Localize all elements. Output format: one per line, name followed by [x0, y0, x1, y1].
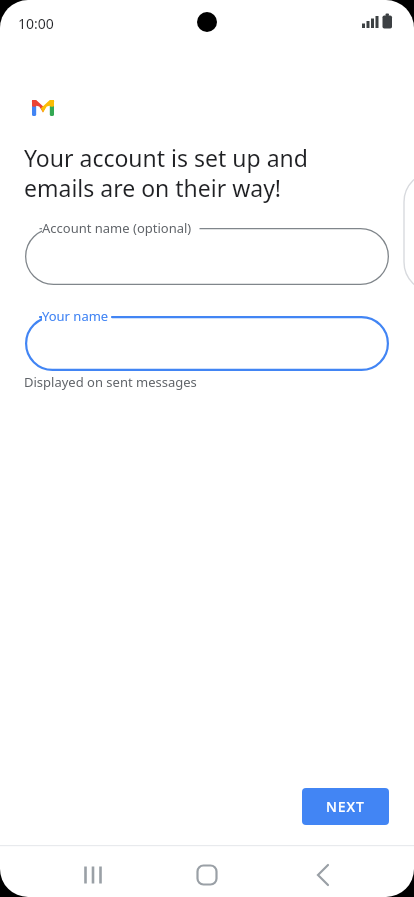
staticText: Account name (optional)	[42, 219, 192, 237]
button[interactable]: Account name (optional) text field	[25, 228, 389, 285]
button[interactable]: Back	[296, 848, 350, 897]
staticText: Your account is set up and emails are on…	[24, 142, 308, 204]
button[interactable]: NEXT	[302, 788, 389, 825]
staticText: Displayed on sent messages	[24, 373, 197, 391]
button[interactable]: Recent apps	[66, 848, 120, 897]
staticText: 10:00	[18, 14, 54, 33]
button[interactable]: Home	[180, 848, 234, 897]
staticText: Your name	[42, 307, 109, 325]
staticText: NEXT	[326, 797, 365, 816]
button[interactable]: Your name text field	[25, 316, 389, 371]
